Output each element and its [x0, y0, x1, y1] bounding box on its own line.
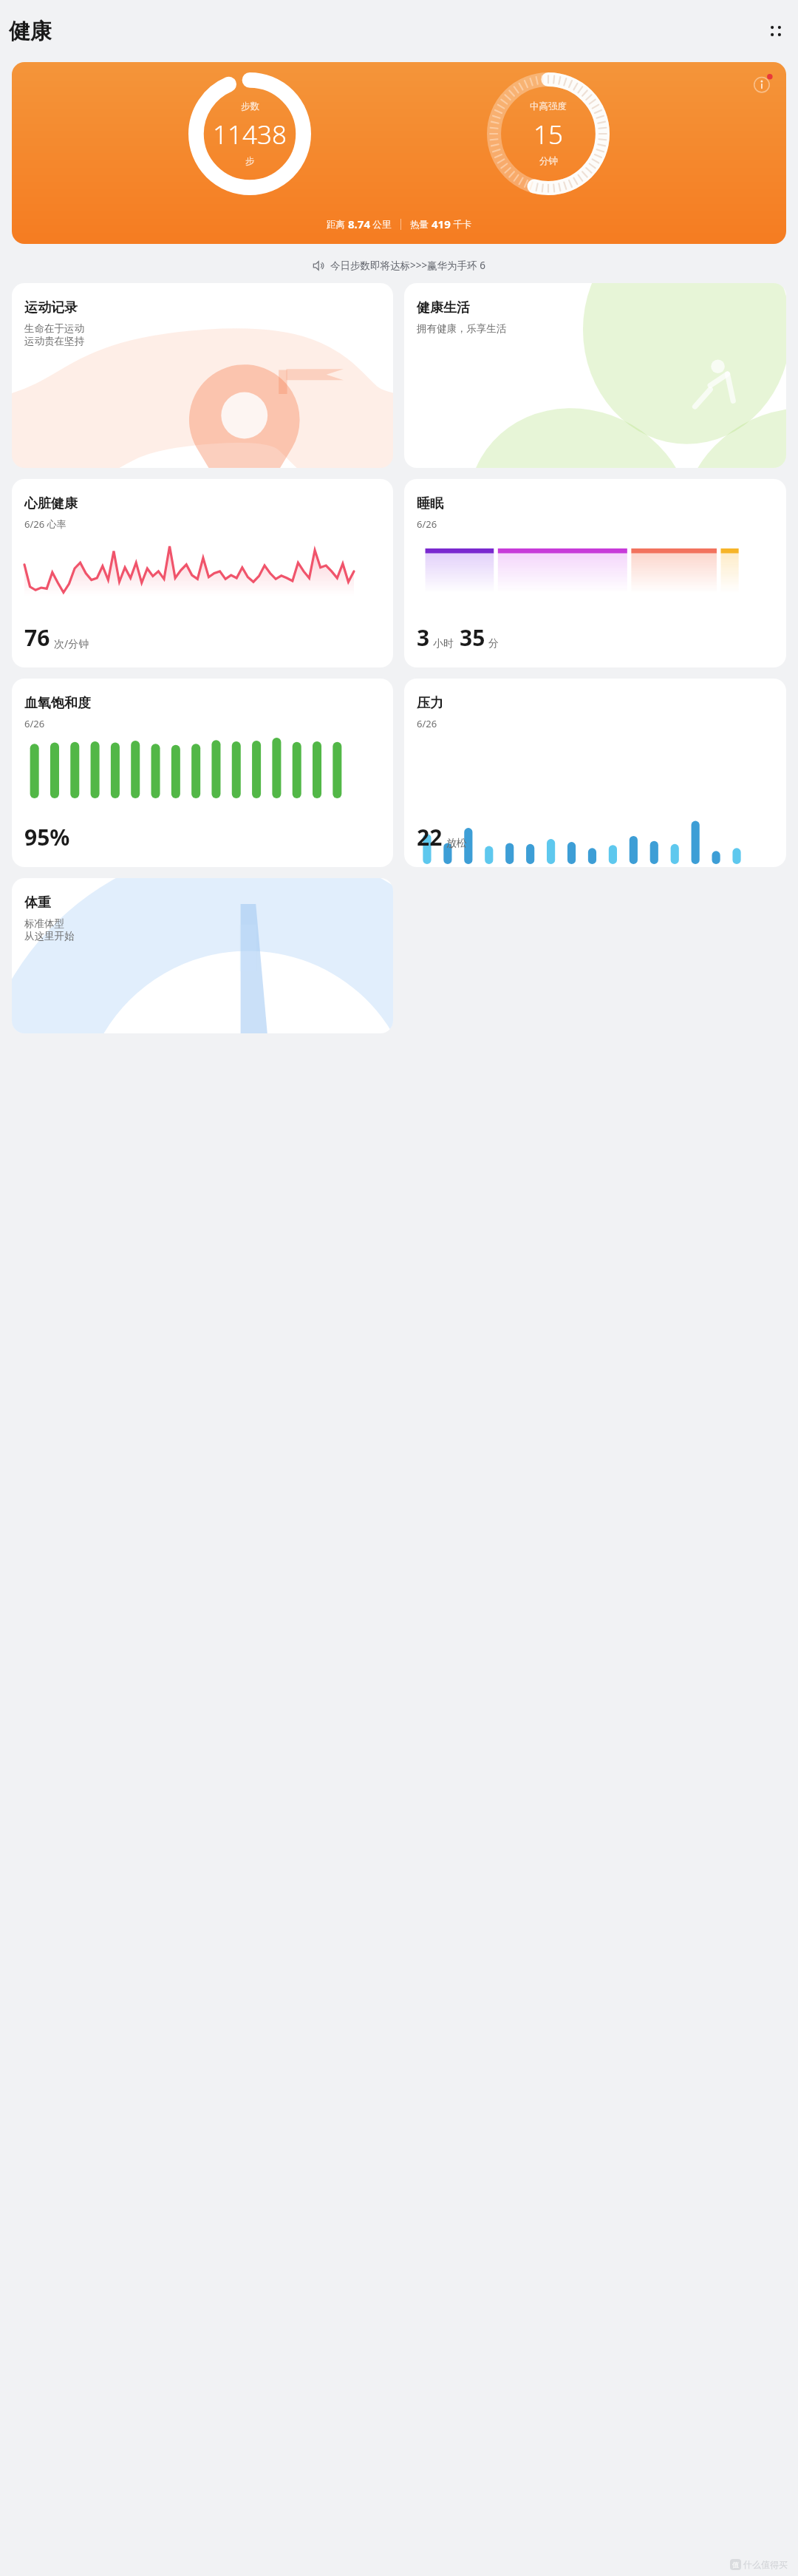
staticText: 419: [432, 217, 451, 231]
staticText: 分钟: [539, 155, 558, 167]
staticText: 体重: [24, 894, 51, 911]
staticText: 压力: [417, 695, 443, 712]
staticText: 步: [245, 155, 255, 167]
staticText: 6/26 心率: [24, 517, 66, 531]
staticText: 拥有健康，乐享生活: [417, 322, 507, 335]
button[interactable]: 今日步数即将达标>>>赢华为手环 6: [0, 250, 798, 281]
staticText: 6/26: [417, 717, 437, 730]
staticText: 95%: [24, 822, 70, 852]
staticText: 3: [417, 622, 430, 653]
staticText: 放松: [446, 837, 467, 850]
staticText: 热量: [410, 218, 432, 231]
staticText: 15: [533, 117, 563, 152]
staticText: 分: [488, 637, 499, 650]
staticText: 公里: [370, 218, 392, 231]
staticText: 小时: [433, 637, 454, 650]
button[interactable]: 压力: [404, 679, 786, 867]
staticText: 步数: [241, 101, 259, 112]
staticText: 健康: [9, 18, 52, 45]
staticText: 从这里开始: [24, 930, 75, 942]
staticText: 千卡: [451, 218, 472, 231]
staticText: 6/26: [417, 517, 437, 531]
staticText: 标准体型: [24, 917, 64, 930]
staticText: 今日步数即将达标>>>赢华为手环 6: [330, 259, 485, 272]
button[interactable]: More options: [760, 15, 792, 47]
button[interactable]: Information: [12, 62, 786, 244]
staticText: 运动贵在坚持: [24, 335, 84, 347]
staticText: 心脏健康: [24, 495, 78, 512]
button[interactable]: 体重: [12, 878, 393, 1033]
staticText: 睡眠: [417, 495, 443, 512]
button[interactable]: 健康生活: [404, 283, 786, 468]
staticText: 6/26: [24, 717, 45, 730]
staticText: 22: [417, 822, 443, 852]
staticText: 血氧饱和度: [24, 695, 91, 712]
button[interactable]: 心脏健康: [12, 479, 393, 667]
button[interactable]: 睡眠: [404, 479, 786, 667]
staticText: 生命在于运动: [24, 322, 84, 335]
staticText: 35: [460, 622, 485, 653]
staticText: 11438: [213, 117, 287, 152]
staticText: 次/分钟: [54, 636, 89, 650]
staticText: 距离: [327, 218, 348, 231]
staticText: 什么值得买: [743, 2559, 788, 2570]
button[interactable]: 运动记录: [12, 283, 393, 468]
staticText: 值: [732, 2560, 739, 2569]
staticText: 运动记录: [24, 299, 78, 316]
staticText: 8.74: [348, 217, 370, 231]
staticText: 76: [24, 622, 50, 653]
button[interactable]: Information: [751, 71, 776, 96]
button[interactable]: 血氧饱和度: [12, 679, 393, 867]
staticText: 健康生活: [417, 299, 470, 316]
staticText: 中高强度: [530, 101, 567, 112]
